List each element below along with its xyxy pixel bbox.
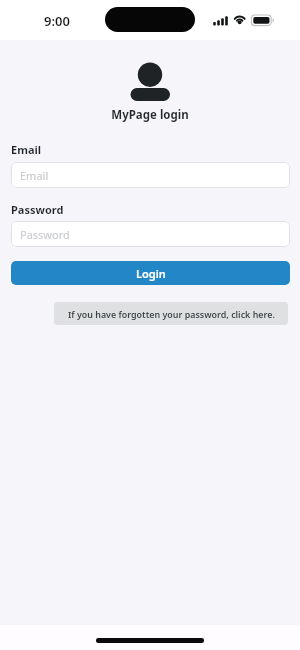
button[interactable]: If you have forgotten your password, cli… <box>54 302 288 325</box>
button[interactable]: Email <box>11 162 290 188</box>
button[interactable]: Password <box>11 221 290 247</box>
staticText: Email <box>20 168 49 183</box>
staticText: MyPage login <box>0 107 300 123</box>
staticText: Login <box>136 266 166 281</box>
staticText: Password <box>20 227 70 242</box>
staticText: Password <box>11 202 64 217</box>
staticText: Email <box>11 142 42 157</box>
staticText: 9:00 <box>44 12 70 30</box>
staticText: If you have forgotten your password, cli… <box>68 308 275 320</box>
button[interactable]: Login <box>11 261 290 285</box>
